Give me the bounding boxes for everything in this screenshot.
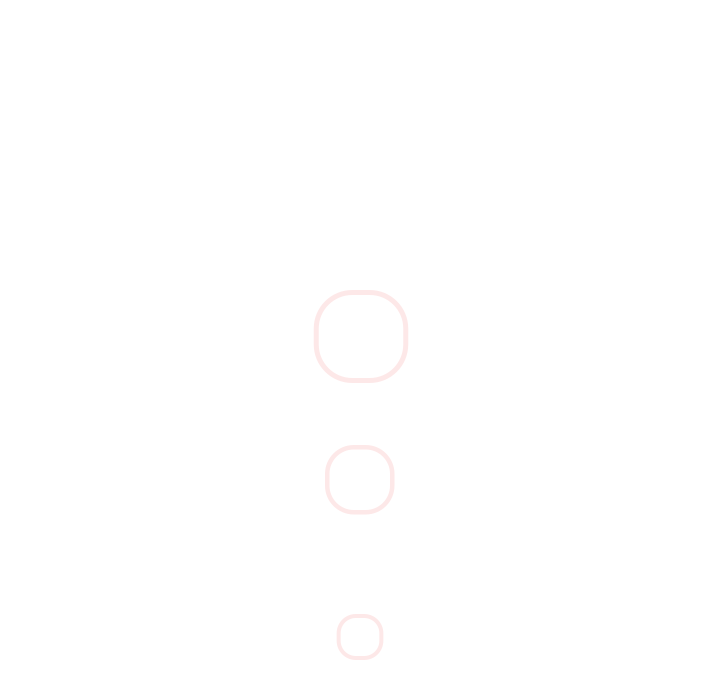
- button[interactable]: Small tile: [339, 616, 381, 658]
- button[interactable]: Medium tile: [327, 447, 392, 512]
- button[interactable]: Large tile: [316, 292, 406, 380]
